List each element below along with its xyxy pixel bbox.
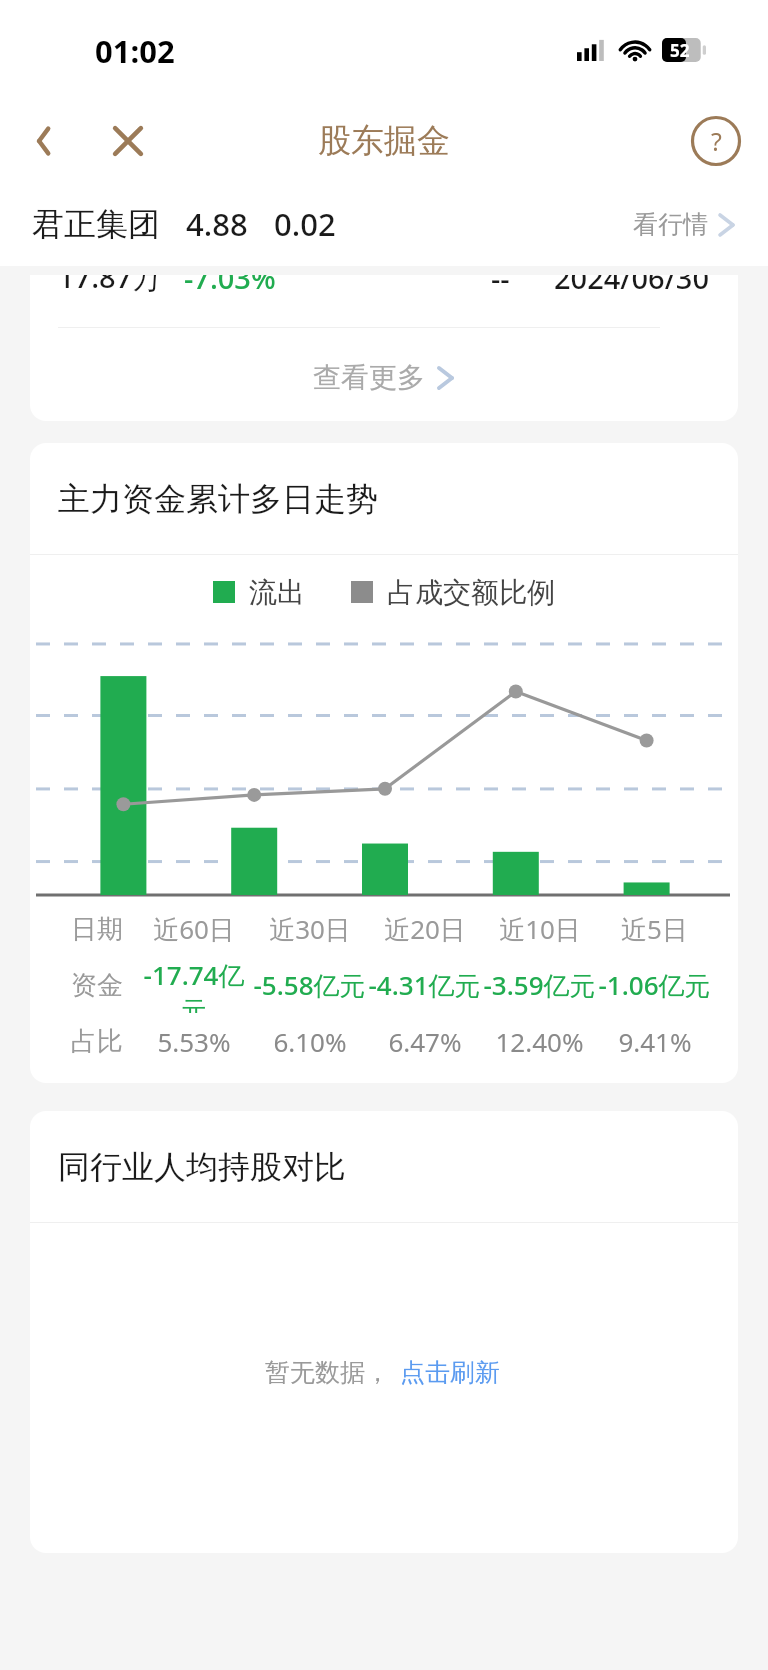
button[interactable]: Help <box>690 115 742 167</box>
staticText: 2024/06/30 <box>554 275 710 297</box>
staticText: 主力资金累计多日走势 <box>58 479 378 519</box>
button[interactable]: Close <box>100 113 156 169</box>
staticText: 近10日 <box>499 911 581 947</box>
staticText: 流出 <box>249 575 305 610</box>
button[interactable]: Back <box>18 114 72 168</box>
staticText: 12.40% <box>495 1024 584 1059</box>
button[interactable]: 看行情 <box>633 201 736 248</box>
staticText: 6.10% <box>273 1024 347 1059</box>
staticText: 近5日 <box>621 911 688 947</box>
staticText: 近30日 <box>269 911 351 947</box>
staticText: -5.58亿元 <box>253 967 366 1003</box>
staticText: 5.53% <box>157 1024 231 1059</box>
staticText: 点击刷新 <box>400 1357 500 1388</box>
staticText: 9.41% <box>618 1024 692 1059</box>
button[interactable]: 查看更多 <box>293 350 475 405</box>
staticText: 查看更多 <box>313 360 425 395</box>
staticText: 看行情 <box>633 209 708 240</box>
staticText: -4.31亿元 <box>368 967 481 1003</box>
staticText: 日期 <box>71 913 123 946</box>
staticText: 占成交额比例 <box>387 575 555 610</box>
staticText: 暂无数据， <box>265 1357 390 1388</box>
staticText: 6.47% <box>388 1024 462 1059</box>
staticText: 52 <box>670 39 690 62</box>
staticText: ? <box>711 124 722 158</box>
staticText: 17.87万 <box>58 275 162 297</box>
staticText: 0.02 <box>274 203 336 245</box>
staticText: 4.88 <box>186 203 248 245</box>
button[interactable]: 点击刷新 <box>396 1351 504 1394</box>
staticText: 01:02 <box>95 30 175 72</box>
staticText: 资金 <box>71 969 123 1002</box>
staticText: 股东掘金 <box>318 120 450 162</box>
staticText: 君正集团 <box>32 204 160 244</box>
staticText: 占比 <box>71 1025 123 1058</box>
staticText: -1.06亿元 <box>598 967 711 1003</box>
staticText: -7.03% <box>184 275 276 297</box>
staticText: 同行业人均持股对比 <box>58 1147 346 1187</box>
staticText: -17.74亿元 <box>136 957 252 1013</box>
staticText: 近60日 <box>153 911 235 947</box>
staticText: -3.59亿元 <box>483 967 596 1003</box>
staticText: 近20日 <box>384 911 466 947</box>
staticText: -- <box>491 275 510 297</box>
